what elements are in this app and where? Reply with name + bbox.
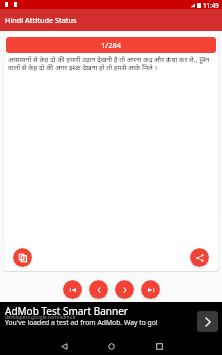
button[interactable]: Recents: [149, 338, 169, 355]
button[interactable]: Home: [101, 338, 121, 355]
staticText: Hindi Attitude Status: [5, 15, 77, 25]
staticText: आसमानों से केह दो की हमारी उड़ान देखनी ह…: [8, 55, 214, 72]
staticText: AdMob Test Smart Banner: [5, 304, 128, 318]
button[interactable]: Copy: [13, 248, 32, 267]
staticText: You've loaded a test ad from AdMob. Way …: [5, 318, 158, 327]
staticText: 11:49: [203, 1, 219, 9]
button[interactable]: Previous: [89, 280, 108, 299]
button[interactable]: Skip to last: [141, 280, 160, 299]
button[interactable]: Skip to first: [63, 280, 82, 299]
staticText: developers.google.com/admob: [5, 314, 76, 321]
button[interactable]: Share: [190, 248, 209, 267]
button[interactable]: Next: [115, 280, 134, 299]
button[interactable]: Back: [54, 338, 74, 355]
button[interactable]: Open ad: [197, 311, 218, 332]
button[interactable]: 1/284: [6, 37, 216, 53]
staticText: 1/284: [101, 40, 122, 50]
